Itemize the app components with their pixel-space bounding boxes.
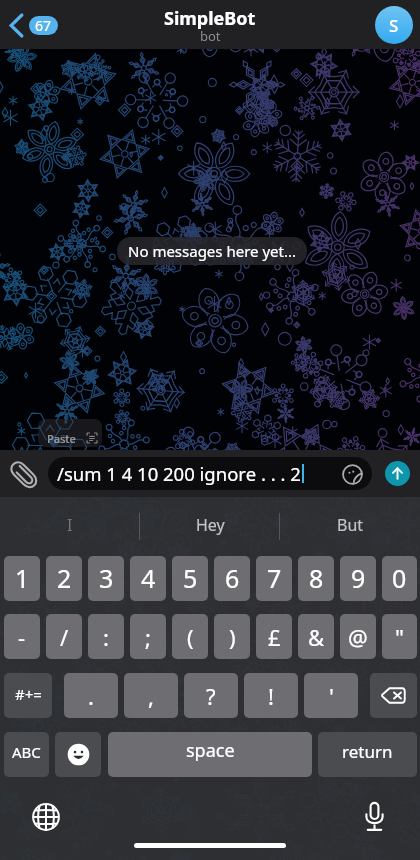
button[interactable]: 0 <box>382 556 417 601</box>
staticText: 0 <box>392 561 407 595</box>
staticText: 3 <box>99 561 114 595</box>
button[interactable]: ! <box>244 673 298 718</box>
staticText: ' <box>329 681 334 711</box>
staticText: I <box>67 514 73 536</box>
staticText: 1 <box>15 561 30 595</box>
other: Emoji <box>67 743 90 766</box>
button[interactable]: Back <box>9 13 58 38</box>
button[interactable]: 1 <box>4 556 40 601</box>
staticText: ; <box>145 622 151 652</box>
staticText: ! <box>268 681 274 711</box>
button[interactable]: 3 <box>88 556 124 601</box>
button[interactable]: £ <box>256 614 292 659</box>
button[interactable]: But <box>280 497 420 556</box>
button[interactable]: 4 <box>130 556 166 601</box>
staticText: bot <box>200 27 221 45</box>
button[interactable]: : <box>88 614 124 659</box>
button[interactable]: & <box>298 614 334 659</box>
staticText: Paste <box>47 431 76 446</box>
button[interactable]: return <box>318 732 417 777</box>
button[interactable]: Send <box>385 461 410 486</box>
button[interactable]: /sum 1 4 10 200 ignore . . . 2 <box>48 457 372 490</box>
staticText: space <box>186 738 235 763</box>
button[interactable]: 8 <box>298 556 334 601</box>
staticText: ) <box>229 622 236 652</box>
button[interactable]: Change keyboard <box>26 797 66 837</box>
button[interactable]: ABC <box>4 732 49 777</box>
staticText: 67 <box>35 16 52 35</box>
staticText: Hey <box>196 514 225 536</box>
button[interactable]: ? <box>184 673 238 718</box>
staticText: @ <box>348 622 368 652</box>
button[interactable]: Emoji <box>55 732 101 777</box>
button[interactable]: 9 <box>340 556 376 601</box>
button[interactable]: 7 <box>256 556 292 601</box>
button[interactable]: 5 <box>172 556 208 601</box>
button[interactable]: . <box>64 673 118 718</box>
button[interactable]: Attach file <box>9 457 37 491</box>
button[interactable]: Profile <box>375 6 413 44</box>
staticText: ? <box>206 681 216 711</box>
button[interactable]: ' <box>304 673 358 718</box>
staticText: £ <box>268 622 281 652</box>
staticText: : <box>103 622 109 652</box>
button[interactable]: 6 <box>214 556 250 601</box>
button[interactable]: , <box>124 673 178 718</box>
staticText: / <box>60 622 69 652</box>
button[interactable]: Paste <box>38 419 102 447</box>
staticText: But <box>337 514 364 536</box>
staticText: return <box>342 740 393 763</box>
staticText: - <box>18 622 26 652</box>
staticText: S <box>389 14 399 37</box>
staticText: ABC <box>12 742 41 762</box>
button[interactable]: - <box>4 614 40 659</box>
staticText: 8 <box>309 561 324 595</box>
button[interactable]: I <box>0 497 140 556</box>
staticText: 6 <box>225 561 240 595</box>
staticText: 9 <box>351 561 366 595</box>
button[interactable]: ( <box>172 614 208 659</box>
staticText: /sum 1 4 10 200 ignore . . . 2 <box>57 461 301 486</box>
button[interactable]: ; <box>130 614 166 659</box>
button[interactable]: Dictate <box>354 796 394 836</box>
staticText: & <box>308 622 325 652</box>
staticText: , <box>148 681 154 711</box>
button[interactable]: 2 <box>46 556 82 601</box>
staticText: " <box>395 622 404 652</box>
staticText: 5 <box>183 561 198 595</box>
staticText: SimpleBot <box>164 6 256 31</box>
button[interactable]: Backspace <box>370 673 417 718</box>
staticText: 4 <box>141 561 156 595</box>
staticText: ( <box>187 622 194 652</box>
button[interactable]: #+= <box>4 673 52 718</box>
button[interactable]: / <box>46 614 82 659</box>
staticText: No messages here yet... <box>128 241 296 261</box>
button[interactable]: " <box>382 614 417 659</box>
button[interactable]: ) <box>214 614 250 659</box>
staticText: 2 <box>57 561 72 595</box>
button[interactable]: space <box>108 732 312 777</box>
staticText: #+= <box>15 684 42 704</box>
button[interactable]: Hey <box>140 497 280 556</box>
staticText: . <box>88 681 94 711</box>
button[interactable]: Stickers <box>340 462 364 486</box>
button[interactable]: @ <box>340 614 376 659</box>
other: Backspace <box>381 686 406 705</box>
staticText: 7 <box>267 561 282 595</box>
